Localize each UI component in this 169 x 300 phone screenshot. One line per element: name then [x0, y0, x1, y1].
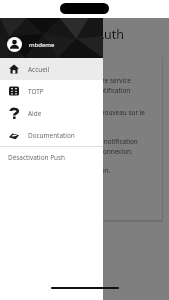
staticText: de réception de toutes les notification: [17, 86, 131, 95]
staticText: Documentation: [28, 131, 75, 140]
staticText: Vous recevrez de nouveau la notification…: [17, 137, 153, 146]
staticText: Désactivation Push: [8, 153, 66, 162]
staticText: Auth: [96, 26, 124, 43]
staticText: Accueil: [28, 65, 50, 74]
staticText: que les demandes de votre connexion.: [17, 147, 133, 156]
staticText: Vous avez bien désactivé votre service: [17, 76, 131, 85]
button[interactable]: TOTP: [0, 80, 103, 102]
button[interactable]: Désactivation Push: [0, 147, 103, 168]
button[interactable]: Open navigation drawer: [6, 25, 24, 43]
button[interactable]: Aide: [0, 102, 103, 124]
button[interactable]: Documentation: [0, 124, 103, 146]
staticText: Merci de votre compréhension.: [17, 166, 111, 175]
staticText: Pour le réactiver, appuyez à nouveau sur…: [17, 108, 153, 117]
button[interactable]: Accueil: [0, 58, 103, 80]
staticText: Aide: [28, 109, 42, 118]
staticText: TOTP: [28, 87, 44, 96]
staticText: mbdeme: [29, 41, 55, 49]
